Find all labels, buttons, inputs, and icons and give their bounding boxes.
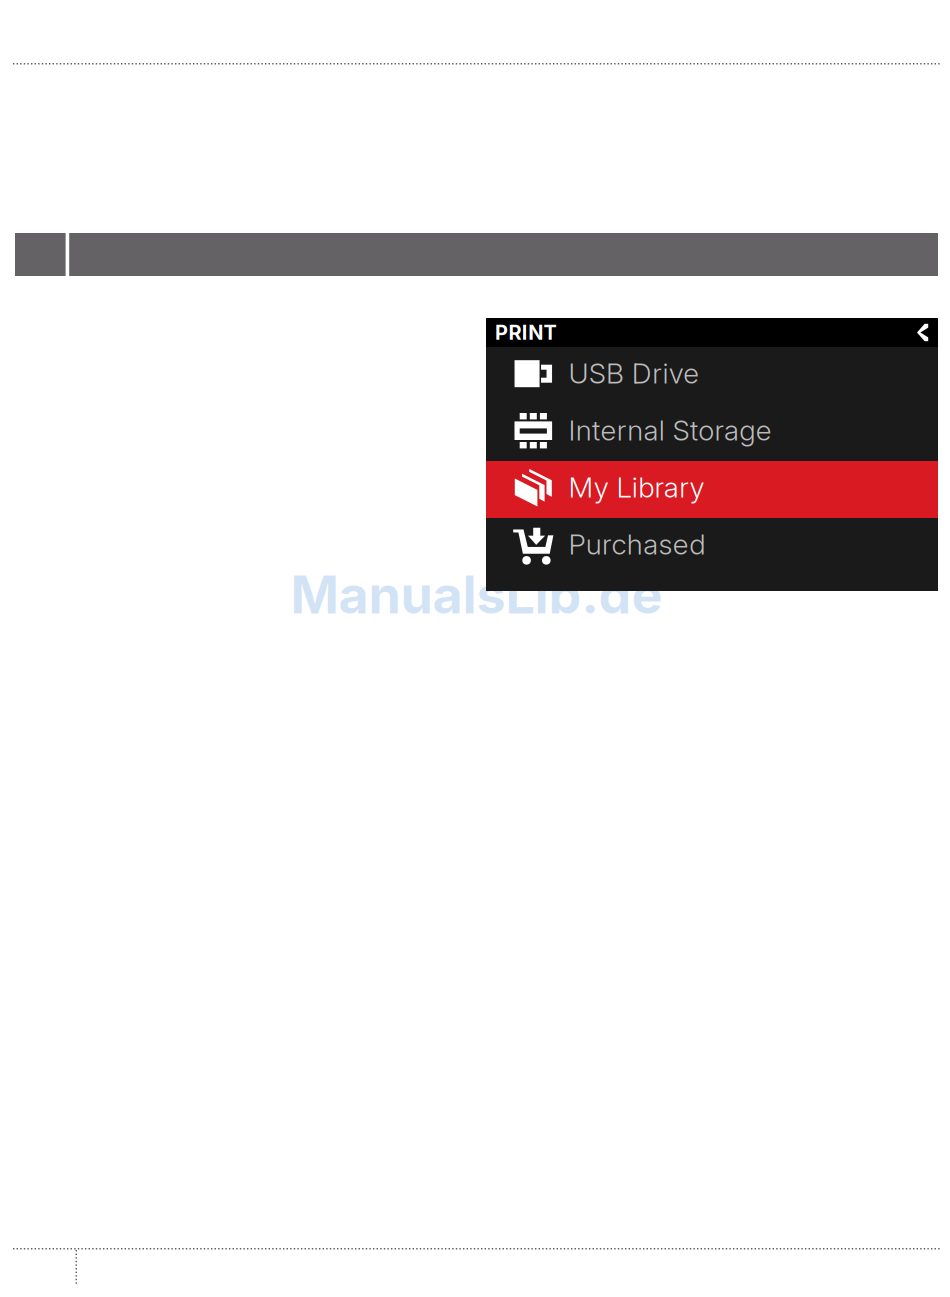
button[interactable]: Internal Storage <box>486 404 938 461</box>
staticText: PRINT <box>495 320 557 345</box>
button[interactable]: Back <box>917 324 928 341</box>
staticText: ManualsLib.de <box>290 563 662 626</box>
staticText: USB Drive <box>568 356 699 390</box>
button[interactable]: My Library <box>486 461 938 518</box>
staticText: Purchased <box>568 527 705 561</box>
staticText: Internal Storage <box>568 413 772 447</box>
button[interactable]: USB Drive <box>486 347 938 404</box>
staticText: My Library <box>568 470 704 504</box>
button[interactable]: Purchased <box>486 518 938 575</box>
